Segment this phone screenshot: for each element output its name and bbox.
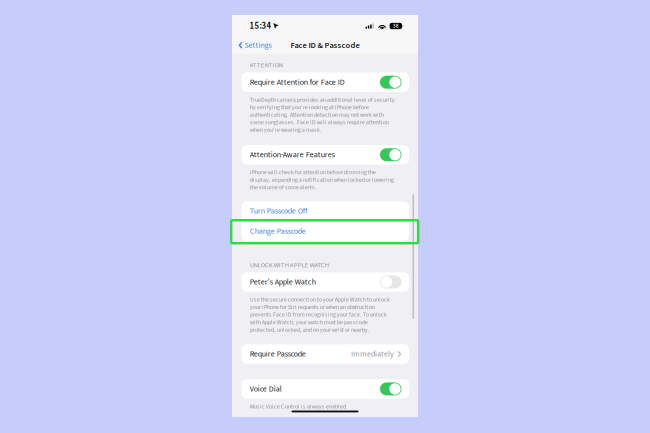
button[interactable]: Turn Passcode Off: [241, 201, 409, 221]
staticText: Turn Passcode Off: [250, 205, 308, 217]
button[interactable]: Settings: [232, 36, 277, 54]
staticText: Use the secure connection to your Apple …: [250, 295, 390, 334]
button[interactable]: Change Passcode: [241, 221, 409, 241]
button[interactable]: Peter's Apple Watch: [241, 272, 409, 292]
staticText: Change Passcode: [250, 225, 306, 237]
staticText: Immediately: [351, 348, 394, 360]
staticText: Require Attention for Face ID: [250, 76, 345, 88]
button[interactable]: Attention-Aware Features: [241, 145, 409, 164]
staticText: Settings: [245, 40, 272, 51]
staticText: iPhone will check for attention before d…: [250, 168, 394, 192]
staticText: ATTENTION: [250, 60, 283, 70]
button[interactable]: Voice Dial: [241, 379, 409, 399]
staticText: Voice Dial: [250, 383, 282, 395]
staticText: Attention-Aware Features: [250, 149, 335, 160]
staticText: TrueDepth camera provides an additional …: [250, 95, 395, 134]
button[interactable]: Require Attention for Face ID: [241, 72, 409, 92]
staticText: 38: [393, 22, 399, 30]
staticText: Face ID & Passcode: [290, 39, 359, 51]
staticText: UNLOCK WITH APPLE WATCH: [250, 260, 329, 270]
button[interactable]: Require Passcode: [241, 344, 409, 364]
staticText: Music Voice Control is always enabled.: [250, 402, 348, 411]
staticText: 15:34: [249, 20, 271, 32]
staticText: Require Passcode: [250, 348, 306, 360]
staticText: Peter's Apple Watch: [250, 276, 316, 288]
